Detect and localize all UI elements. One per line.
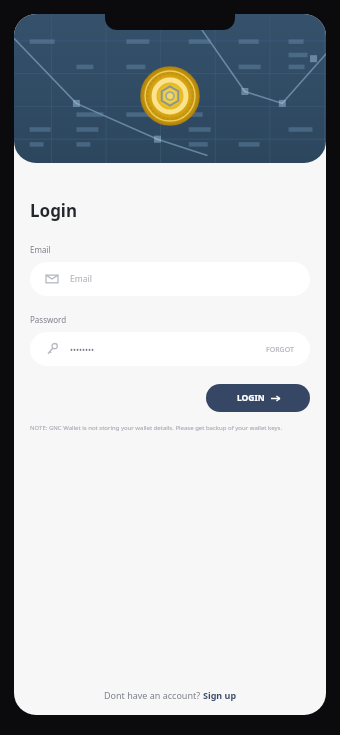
staticText: Login <box>30 199 78 222</box>
button[interactable]: FORGOT <box>266 345 294 355</box>
button[interactable]: LOGIN <box>206 384 310 412</box>
staticText: FORGOT <box>266 345 294 355</box>
staticText: Sign up <box>203 689 237 701</box>
staticText: Dont have an account? <box>104 689 203 701</box>
staticText: Email <box>30 244 51 255</box>
button[interactable]: Email <box>30 262 310 296</box>
button[interactable]: •••••••• <box>30 332 310 366</box>
staticText: NOTE: GNC Wallet is not storing your wal… <box>30 424 288 432</box>
staticText: LOGIN <box>237 392 265 404</box>
staticText: Password <box>30 314 67 325</box>
staticText: Email <box>70 273 92 285</box>
staticText: •••••••• <box>70 344 95 355</box>
button[interactable]: Sign up <box>203 689 237 701</box>
